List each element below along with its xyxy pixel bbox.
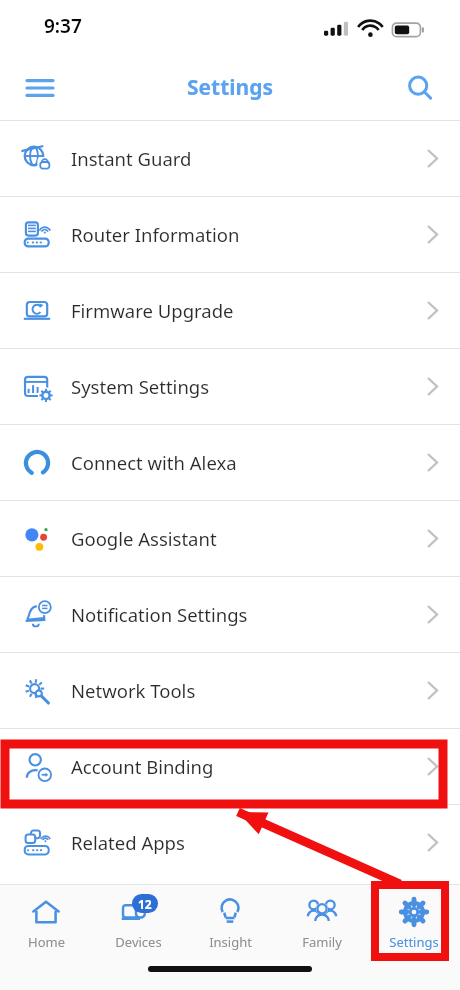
button[interactable]: Insight: [184, 885, 276, 990]
button[interactable]: Connect with Alexa: [0, 425, 460, 500]
button[interactable]: Router Information: [0, 197, 460, 272]
staticText: Settings: [389, 933, 439, 951]
button[interactable]: Menu: [16, 64, 64, 112]
staticText: Settings: [187, 73, 274, 102]
button[interactable]: Family: [276, 885, 368, 990]
button[interactable]: 12: [92, 885, 184, 990]
staticText: Devices: [115, 933, 162, 951]
staticText: Connect with Alexa: [71, 450, 427, 475]
staticText: 9:37: [44, 13, 82, 39]
staticText: Account Binding: [71, 754, 427, 779]
button[interactable]: Home: [0, 885, 92, 990]
staticText: Notification Settings: [71, 602, 427, 627]
staticText: System Settings: [71, 374, 427, 399]
staticText: 12: [138, 896, 152, 912]
button[interactable]: System Settings: [0, 349, 460, 424]
button[interactable]: Related Apps: [0, 805, 460, 880]
staticText: Insight: [209, 933, 252, 951]
staticText: Instant Guard: [71, 146, 427, 171]
button[interactable]: Account Binding: [0, 729, 460, 804]
staticText: Router Information: [71, 222, 427, 247]
staticText: Google Assistant: [71, 526, 427, 551]
staticText: Firmware Upgrade: [71, 298, 427, 323]
button[interactable]: Settings: [368, 885, 460, 990]
staticText: Network Tools: [71, 678, 427, 703]
button[interactable]: Notification Settings: [0, 577, 460, 652]
button[interactable]: Firmware Upgrade: [0, 273, 460, 348]
button[interactable]: Instant Guard: [0, 121, 460, 196]
button[interactable]: Network Tools: [0, 653, 460, 728]
staticText: Family: [302, 933, 342, 951]
staticText: Related Apps: [71, 830, 427, 855]
staticText: Home: [28, 933, 65, 951]
button[interactable]: Search: [396, 64, 444, 112]
button[interactable]: Google Assistant: [0, 501, 460, 576]
